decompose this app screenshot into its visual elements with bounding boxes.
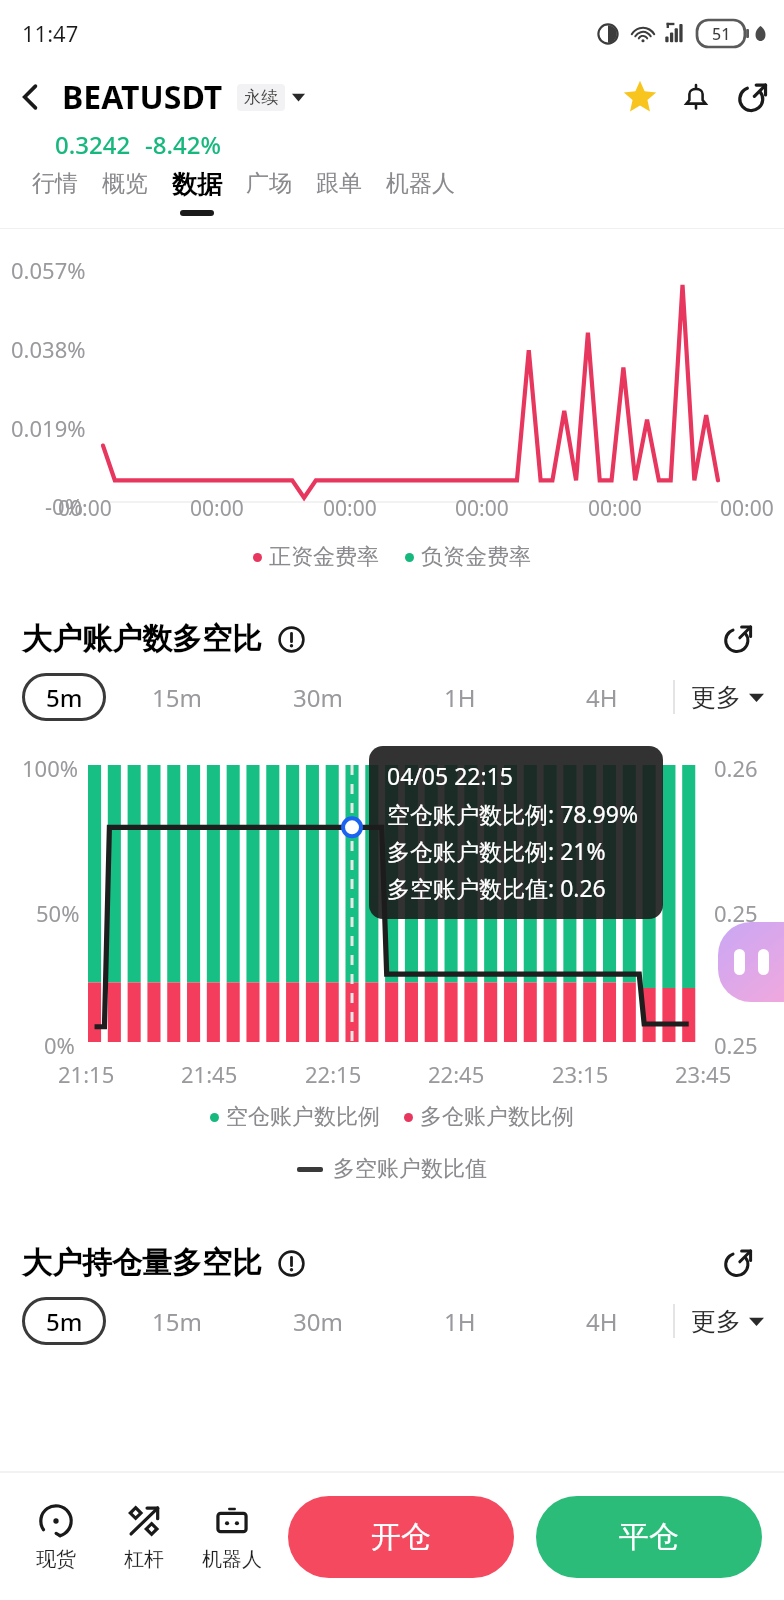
staticText: 00:00 [588, 494, 642, 523]
staticText: 多空账户数比值: 0.26 [387, 872, 606, 903]
button[interactable]: Open full chart [714, 1239, 762, 1287]
staticText: 23:45 [675, 1059, 732, 1089]
staticText: 15m [152, 681, 202, 714]
staticText: 空仓账户数比例: 78.99% [387, 798, 639, 829]
staticText: 0.038% [11, 334, 86, 364]
staticText: 21:45 [181, 1059, 238, 1089]
staticText: 0% [44, 1030, 75, 1060]
staticText: 大户账户数多空比 [22, 620, 262, 658]
button[interactable]: Share [724, 67, 780, 127]
button[interactable]: 5m [22, 673, 106, 721]
staticText: 00:00 [58, 494, 112, 523]
staticText: 22:15 [305, 1059, 362, 1089]
button[interactable]: 机器人 [374, 161, 467, 216]
staticText: 空仓账户数比例 [226, 1103, 380, 1131]
button[interactable]: 跟单 [304, 161, 374, 216]
button[interactable]: Info [274, 1246, 308, 1280]
button[interactable]: 更多 [675, 682, 766, 713]
staticText: 多空账户数比值 [333, 1155, 487, 1183]
staticText: 0.26 [714, 753, 758, 783]
staticText: 5m [46, 1305, 83, 1338]
staticText: 00:00 [323, 494, 377, 523]
button[interactable]: Back [0, 66, 62, 128]
staticText: 行情 [32, 169, 78, 198]
staticText: 4H [586, 1305, 618, 1338]
staticText: 杠杆 [124, 1547, 164, 1572]
staticText: 0.25 [714, 898, 758, 928]
staticText: 22:45 [428, 1059, 485, 1089]
button[interactable]: 平仓 [536, 1496, 762, 1578]
staticText: 00:00 [190, 494, 244, 523]
staticText: 更多 [691, 682, 741, 713]
staticText: 0.057% [11, 255, 86, 285]
staticText: 51 [712, 23, 731, 45]
button[interactable]: 机器人 [188, 1496, 276, 1578]
staticText: 30m [293, 1305, 343, 1338]
staticText: 1H [444, 681, 476, 714]
staticText: 00:00 [720, 494, 774, 523]
button[interactable]: 30m [247, 673, 389, 721]
staticText: 4H [586, 681, 618, 714]
button[interactable]: 永续 [235, 84, 307, 111]
staticText: 0.3242 [55, 128, 131, 161]
button[interactable]: 广场 [234, 161, 304, 216]
staticText: 机器人 [202, 1547, 262, 1572]
staticText: 21:15 [58, 1059, 115, 1089]
staticText: 0.019% [11, 413, 86, 443]
staticText: 正资金费率 [269, 543, 379, 571]
staticText: 概览 [102, 169, 148, 198]
button[interactable]: Alerts [668, 69, 724, 125]
button[interactable]: 杠杆 [100, 1496, 188, 1578]
button[interactable]: 5m [22, 1297, 106, 1345]
staticText: 跟单 [316, 169, 362, 198]
button[interactable]: 4H [531, 1297, 673, 1345]
staticText: 负资金费率 [421, 543, 531, 571]
staticText: 30m [293, 681, 343, 714]
staticText: 04/05 22:15 [387, 760, 513, 791]
button[interactable]: 概览 [90, 161, 160, 216]
staticText: 多仓账户数比例: 21% [387, 835, 606, 866]
staticText: 15m [152, 1305, 202, 1338]
staticText: 机器人 [386, 169, 455, 198]
staticText: BEATUSDT [62, 75, 223, 119]
staticText: 多仓账户数比例 [420, 1103, 574, 1131]
button[interactable]: Open full chart [714, 615, 762, 663]
button[interactable]: 现货 [12, 1496, 100, 1578]
button[interactable]: 1H [389, 1297, 531, 1345]
staticText: 11:47 [22, 18, 79, 48]
button[interactable]: 数据 [160, 161, 234, 224]
staticText: 50% [36, 898, 80, 928]
button[interactable]: 1H [389, 673, 531, 721]
staticText: 开仓 [371, 1518, 431, 1556]
button[interactable]: 更多 [675, 1306, 766, 1337]
staticText: 更多 [691, 1306, 741, 1337]
staticText: 1H [444, 1305, 476, 1338]
button[interactable]: 开仓 [288, 1496, 514, 1578]
staticText: 大户持仓量多空比 [22, 1244, 262, 1282]
staticText: 平仓 [619, 1518, 679, 1556]
button[interactable]: 15m [106, 673, 247, 721]
staticText: 现货 [36, 1547, 76, 1572]
button[interactable]: 30m [247, 1297, 389, 1345]
button[interactable]: 4H [531, 673, 673, 721]
staticText: 00:00 [455, 494, 509, 523]
button[interactable]: 行情 [20, 161, 90, 216]
staticText: 0.25 [714, 1030, 758, 1060]
button[interactable]: Favorite [612, 69, 668, 125]
staticText: 数据 [172, 169, 222, 200]
staticText: 永续 [244, 87, 278, 108]
staticText: 5m [46, 681, 83, 714]
staticText: 广场 [246, 169, 292, 198]
staticText: 23:15 [552, 1059, 609, 1089]
button[interactable]: Assistant [718, 922, 784, 1002]
button[interactable]: Info [274, 622, 308, 656]
staticText: -8.42% [145, 128, 221, 161]
button[interactable]: 15m [106, 1297, 247, 1345]
staticText: 100% [22, 753, 79, 783]
staticText: -0% [45, 491, 83, 521]
